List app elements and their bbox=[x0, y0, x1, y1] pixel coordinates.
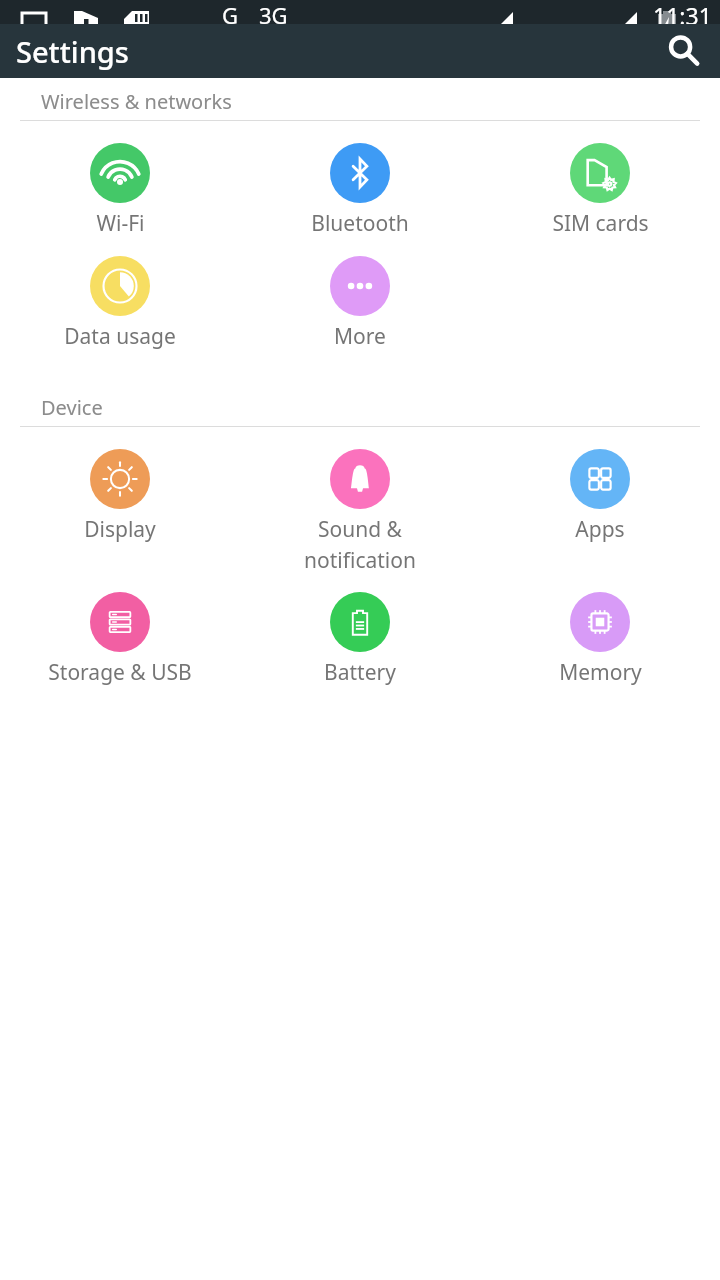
staticText: Bluetooth bbox=[311, 209, 409, 238]
button[interactable]: Bluetooth bbox=[240, 143, 480, 238]
button[interactable]: Storage & USB bbox=[0, 592, 240, 687]
staticText: Wireless & networks bbox=[41, 88, 232, 115]
button[interactable]: Data usage bbox=[0, 256, 240, 351]
button[interactable]: Wi-Fi bbox=[0, 143, 240, 238]
button[interactable]: Display bbox=[0, 449, 240, 544]
staticText: Apps bbox=[575, 515, 625, 544]
staticText: Wi-Fi bbox=[96, 209, 145, 238]
staticText: SIM cards bbox=[552, 209, 649, 238]
button[interactable]: Apps bbox=[480, 449, 720, 544]
staticText: Device bbox=[41, 394, 103, 421]
staticText: Memory bbox=[559, 658, 642, 687]
staticText: Data usage bbox=[64, 322, 176, 351]
staticText: More bbox=[334, 322, 386, 351]
staticText: Battery bbox=[324, 658, 396, 687]
staticText: Settings bbox=[16, 32, 129, 71]
staticText: 11:31 bbox=[653, 0, 712, 24]
button[interactable]: SIM cards bbox=[480, 143, 720, 238]
staticText: Storage & USB bbox=[48, 658, 192, 687]
button[interactable]: Sound & notification bbox=[240, 449, 480, 574]
staticText: 3G bbox=[259, 0, 288, 24]
staticText: G bbox=[222, 0, 239, 24]
button[interactable]: Battery bbox=[240, 592, 480, 687]
staticText: Display bbox=[84, 515, 156, 544]
button[interactable]: Search bbox=[660, 27, 708, 75]
button[interactable]: More bbox=[240, 256, 480, 351]
staticText: Sound & notification bbox=[304, 515, 416, 574]
button[interactable]: Memory bbox=[480, 592, 720, 687]
